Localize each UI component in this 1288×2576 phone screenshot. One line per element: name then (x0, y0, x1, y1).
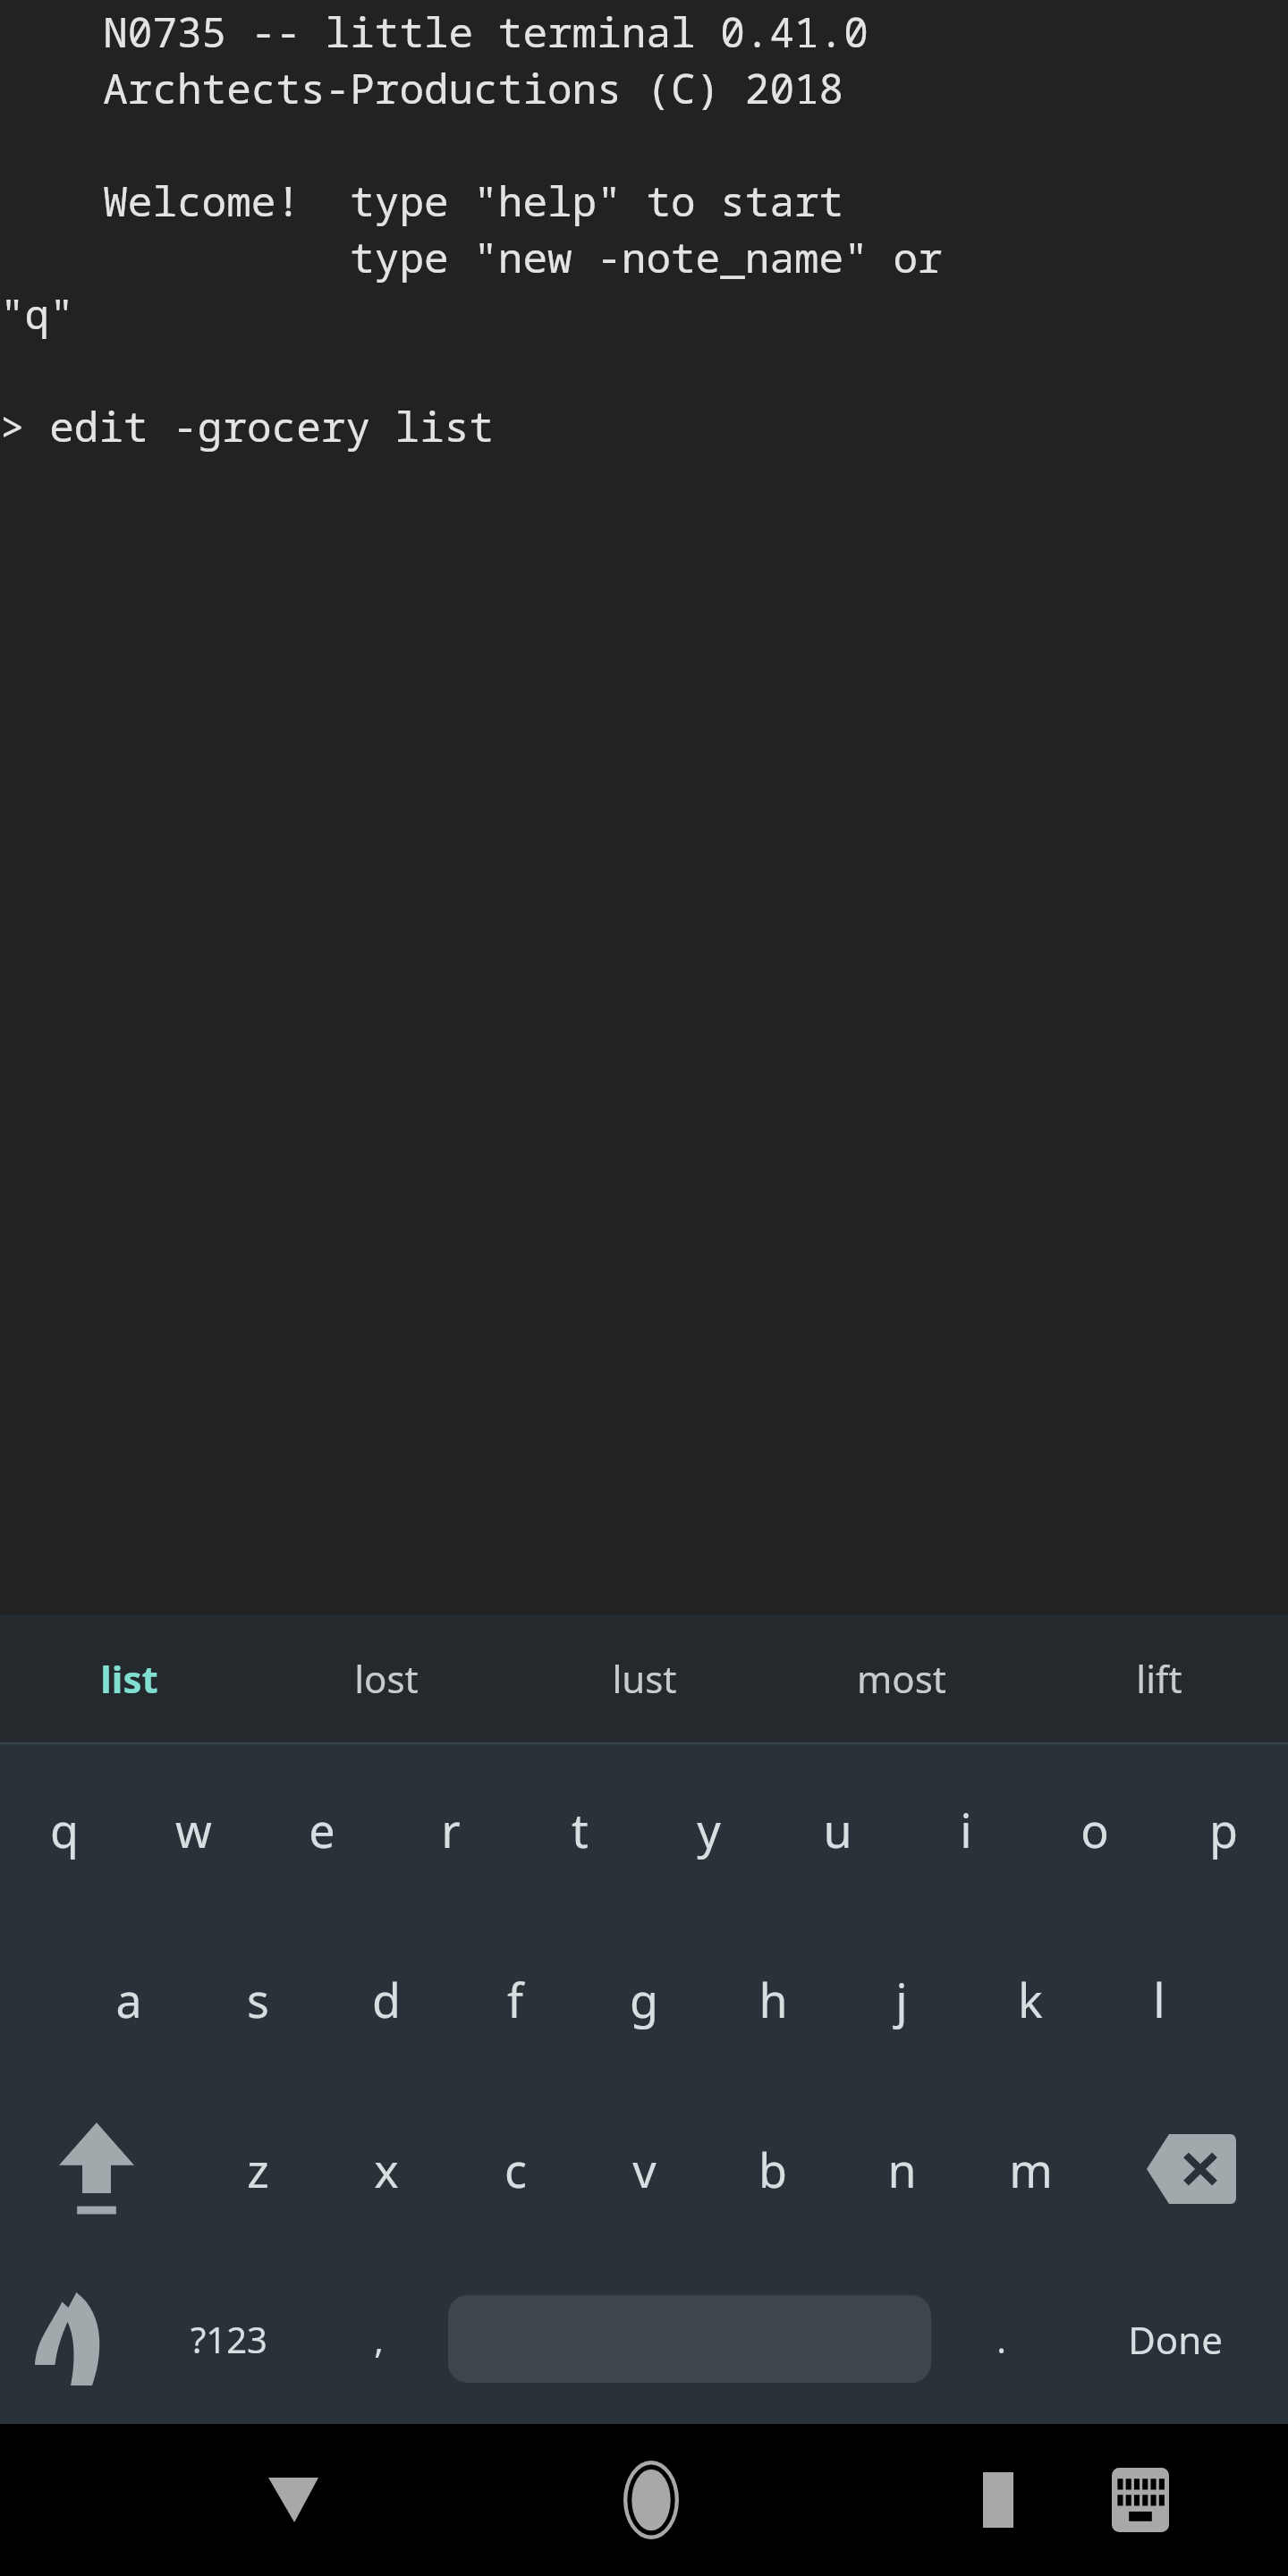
staticText: a (115, 1968, 142, 2031)
button[interactable]: Hide keyboard (241, 2424, 346, 2576)
button[interactable]: f (451, 1914, 580, 2084)
staticText: g (630, 1968, 658, 2031)
button[interactable]: Shift (0, 2084, 193, 2254)
button[interactable]: j (837, 1914, 966, 2084)
staticText: x (374, 2138, 399, 2201)
button[interactable]: lift (1030, 1614, 1288, 1742)
staticText: type "new -note_name" or (54, 229, 943, 285)
staticText: e (309, 1798, 335, 1861)
button[interactable]: a (64, 1914, 193, 2084)
button[interactable]: list (0, 1614, 258, 1742)
button[interactable]: ?123 (140, 2254, 318, 2424)
staticText: > edit -grocery list (0, 398, 495, 454)
button[interactable]: q (0, 1744, 129, 1914)
button[interactable]: l (1095, 1914, 1224, 2084)
button[interactable]: u (773, 1744, 902, 1914)
button[interactable]: m (966, 2084, 1095, 2254)
staticText: "q" (0, 285, 74, 342)
staticText: lost (354, 1653, 419, 1704)
button[interactable]: v (580, 2084, 708, 2254)
staticText: w (175, 1798, 212, 1861)
staticText: m (1009, 2138, 1053, 2201)
staticText: Done (1128, 2314, 1223, 2365)
button[interactable]: z (193, 2084, 322, 2254)
button[interactable]: Change keyboard language (0, 2254, 140, 2424)
staticText: list (100, 1653, 158, 1704)
staticText: Archtects-Productions (C) 2018 (54, 60, 844, 116)
staticText: u (823, 1798, 852, 1861)
staticText: o (1080, 1798, 1109, 1861)
staticText: h (758, 1968, 788, 2031)
button[interactable]: p (1159, 1744, 1288, 1914)
button[interactable]: . (940, 2254, 1062, 2424)
staticText: i (960, 1798, 972, 1861)
staticText: p (1209, 1798, 1238, 1861)
staticText: r (441, 1798, 461, 1861)
staticText: y (697, 1798, 721, 1861)
staticText: v (632, 2138, 657, 2201)
button[interactable]: o (1030, 1744, 1159, 1914)
staticText: t (572, 1798, 589, 1861)
button[interactable]: k (966, 1914, 1095, 2084)
button[interactable]: , (318, 2254, 439, 2424)
staticText: j (895, 1968, 908, 2031)
button[interactable]: Home (598, 2424, 704, 2576)
button[interactable]: g (580, 1914, 708, 2084)
staticText: most (857, 1653, 946, 1704)
button[interactable]: h (708, 1914, 837, 2084)
button[interactable]: n (837, 2084, 966, 2254)
button[interactable]: w (129, 1744, 258, 1914)
staticText: l (1153, 1968, 1165, 2031)
button[interactable]: s (193, 1914, 322, 2084)
staticText: , (374, 2315, 384, 2363)
staticText: k (1018, 1968, 1043, 2031)
staticText: n (887, 2138, 917, 2201)
staticText: Welcome! type "help" to start (54, 173, 844, 229)
staticText: c (504, 2138, 527, 2201)
button[interactable]: x (322, 2084, 451, 2254)
button[interactable]: Backspace (1095, 2084, 1288, 2254)
button[interactable]: t (515, 1744, 644, 1914)
button[interactable]: y (644, 1744, 773, 1914)
button[interactable]: Recent apps (945, 2424, 1051, 2576)
button[interactable]: Switch keyboard (1088, 2424, 1193, 2576)
button[interactable]: b (708, 2084, 837, 2254)
staticText: ?123 (191, 2315, 267, 2363)
button[interactable]: lust (515, 1614, 773, 1742)
staticText: b (758, 2138, 787, 2201)
staticText: q (50, 1798, 79, 1861)
staticText: N0735 -- little terminal 0.41.0 (54, 4, 869, 60)
button[interactable]: most (773, 1614, 1030, 1742)
staticText: lift (1136, 1653, 1182, 1704)
button[interactable]: lost (258, 1614, 515, 1742)
button[interactable]: i (902, 1744, 1030, 1914)
staticText: f (507, 1968, 523, 2031)
staticText: lust (612, 1653, 677, 1704)
staticText: . (996, 2315, 1006, 2363)
button[interactable]: r (386, 1744, 515, 1914)
button[interactable]: Done (1062, 2254, 1288, 2424)
staticText: z (247, 2138, 269, 2201)
button[interactable]: c (451, 2084, 580, 2254)
button[interactable]: d (322, 1914, 451, 2084)
staticText: d (372, 1968, 401, 2031)
staticText: s (247, 1968, 269, 2031)
button[interactable]: e (258, 1744, 386, 1914)
